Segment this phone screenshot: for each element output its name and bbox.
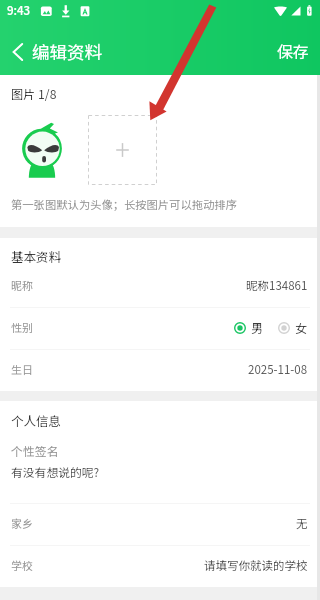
staticText: 图片 1/8	[11, 85, 57, 103]
staticText: 学校	[11, 557, 33, 573]
button[interactable]: 学校	[0, 546, 320, 588]
button[interactable]: 男	[234, 319, 264, 336]
staticText: 编辑资料	[32, 39, 102, 64]
button[interactable]: 生日	[0, 350, 320, 392]
staticText: 昵称	[11, 277, 33, 293]
staticText: 个人信息	[11, 411, 62, 429]
button[interactable]: Add photo	[88, 115, 157, 185]
button[interactable]: 昵称	[0, 266, 320, 308]
staticText: 性别	[11, 319, 33, 335]
staticText: 女	[295, 319, 308, 336]
staticText: 第一张图默认为头像；长按图片可以拖动排序	[11, 196, 237, 212]
staticText: 请填写你就读的学校	[204, 557, 308, 574]
button[interactable]	[0, 437, 320, 503]
staticText: 保存	[277, 40, 309, 63]
staticText: 2025-11-08	[248, 361, 308, 378]
button[interactable]: Back	[2, 36, 34, 68]
staticText: 昵称134861	[246, 277, 308, 294]
button[interactable]: 家乡	[0, 504, 320, 546]
staticText: 男	[251, 319, 264, 336]
staticText: 9:43	[7, 2, 31, 19]
staticText: 基本资料	[11, 247, 62, 265]
staticText: 家乡	[11, 515, 33, 531]
button[interactable]: 保存	[263, 30, 320, 73]
button[interactable]: Profile photo	[12, 115, 82, 185]
staticText: 有没有想说的呢?	[11, 463, 100, 480]
staticText: 个性签名	[11, 442, 59, 459]
staticText: 生日	[11, 361, 33, 377]
button[interactable]: 女	[278, 319, 308, 336]
staticText: 无	[296, 515, 308, 532]
